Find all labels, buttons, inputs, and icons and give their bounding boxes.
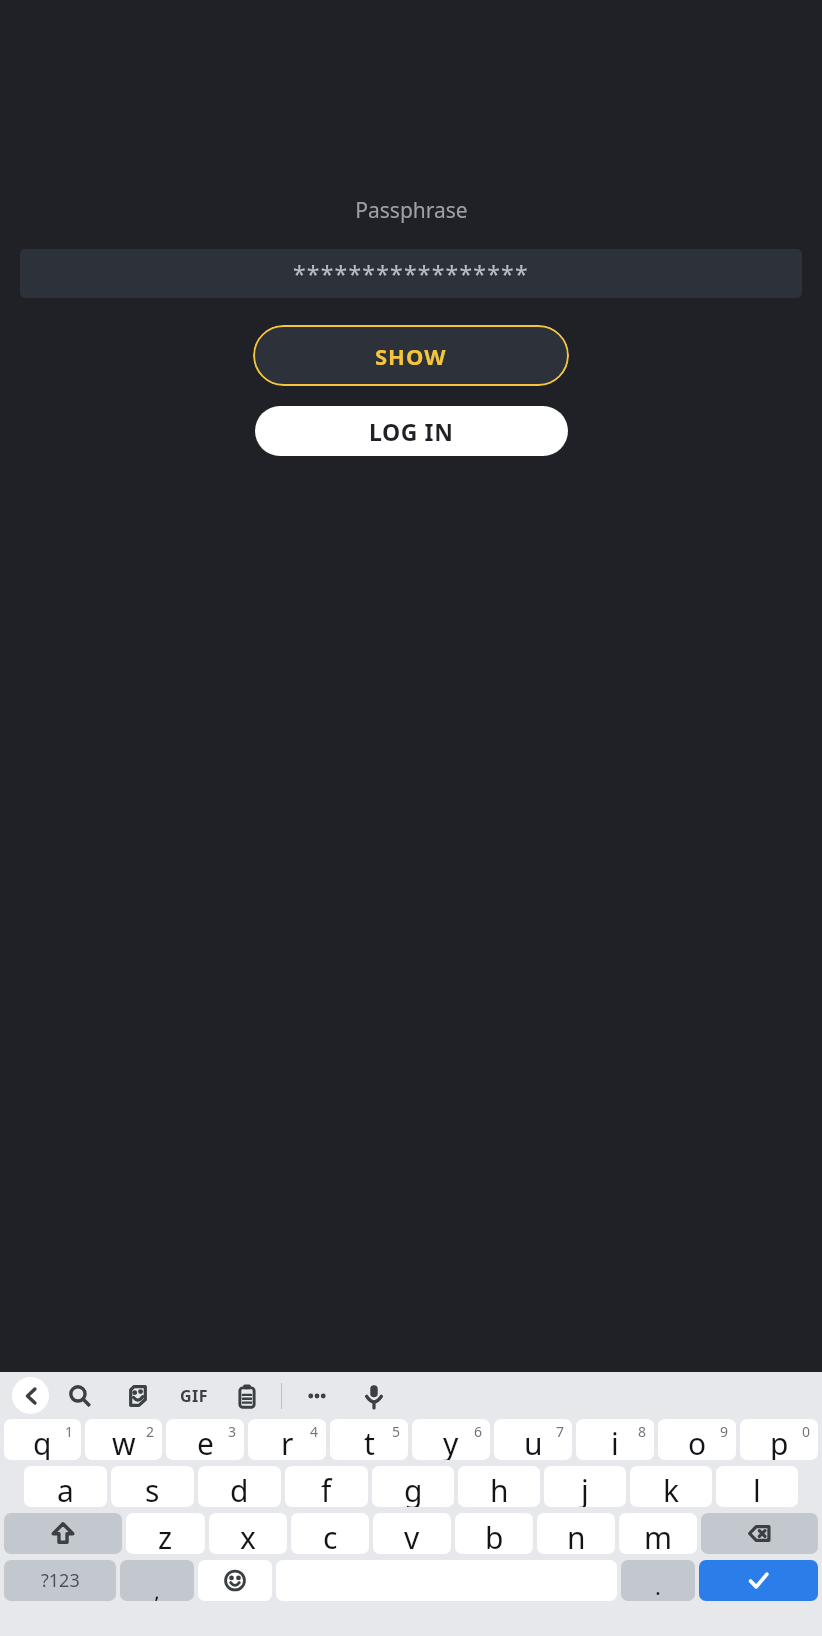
staticText: SHOW [375,341,447,371]
staticText: 0 [802,1422,811,1441]
button[interactable]: c [291,1513,369,1554]
staticText: v [404,1517,420,1554]
button[interactable]: Emoji [198,1560,272,1601]
button[interactable]: Backspace [701,1513,818,1554]
button[interactable]: Back [12,1377,49,1414]
button[interactable]: Voice input [359,1381,389,1411]
staticText: 8 [638,1422,647,1441]
staticText: 5 [392,1422,401,1441]
staticText: d [230,1470,249,1507]
button[interactable]: 6 [412,1419,490,1460]
button[interactable]: SHOW [253,325,569,386]
button[interactable]: 9 [658,1419,736,1460]
staticText: p [770,1423,789,1460]
staticText: a [57,1470,74,1507]
button[interactable]: ***************** [20,249,802,298]
button[interactable]: Enter [699,1560,818,1601]
staticText: c [323,1517,338,1554]
staticText: y [443,1423,459,1460]
staticText: r [281,1423,294,1460]
staticText: 9 [720,1422,729,1441]
button[interactable]: m [619,1513,697,1554]
button[interactable]: f [285,1466,368,1507]
button[interactable]: Stickers [123,1381,153,1411]
button[interactable]: x [209,1513,287,1554]
button[interactable]: 4 [248,1419,326,1460]
button[interactable]: More options [302,1381,332,1411]
button[interactable]: 1 [4,1419,81,1460]
staticText: ?123 [41,1568,80,1593]
button[interactable]: h [458,1466,540,1507]
staticText: t [364,1423,375,1460]
staticText: k [663,1470,680,1507]
staticText: g [404,1470,423,1507]
button[interactable]: n [537,1513,615,1554]
staticText: j [581,1470,589,1507]
staticText: 7 [556,1422,565,1441]
staticText: e [197,1423,214,1460]
staticText: s [145,1470,160,1507]
button[interactable]: , [120,1560,194,1601]
staticText: h [490,1470,509,1507]
staticText: l [753,1470,761,1507]
staticText: z [158,1517,173,1554]
button[interactable]: z [126,1513,205,1554]
button[interactable]: LOG IN [255,406,568,456]
staticText: 4 [310,1422,319,1441]
staticText: x [240,1517,256,1554]
staticText: GIF [180,1385,209,1407]
staticText: m [644,1517,673,1554]
button[interactable]: ?123 [4,1560,116,1601]
staticText: Passphrase [355,196,468,225]
staticText: LOG IN [369,416,454,447]
button[interactable]: 5 [330,1419,408,1460]
button[interactable]: s [111,1466,194,1507]
button[interactable]: Search [66,1382,94,1410]
staticText: b [485,1517,504,1554]
button[interactable]: b [455,1513,533,1554]
staticText: 3 [228,1422,237,1441]
staticText: u [524,1423,543,1460]
button[interactable]: j [544,1466,626,1507]
button[interactable]: 0 [740,1419,818,1460]
staticText: f [321,1470,332,1507]
staticText: 1 [65,1422,74,1441]
staticText: , [154,1575,160,1601]
staticText: q [33,1423,52,1460]
staticText: ***************** [293,258,529,289]
button[interactable]: Clipboard [232,1381,262,1411]
staticText: w [112,1423,136,1460]
button[interactable]: l [716,1466,798,1507]
button[interactable]: GIF [176,1378,212,1414]
button[interactable]: . [621,1560,695,1601]
button[interactable]: Shift [4,1513,122,1554]
button[interactable]: g [372,1466,454,1507]
button[interactable]: v [373,1513,451,1554]
button[interactable]: 2 [85,1419,162,1460]
staticText: 6 [474,1422,483,1441]
button[interactable]: d [198,1466,281,1507]
staticText: o [688,1423,707,1460]
button[interactable]: 7 [494,1419,572,1460]
button[interactable]: 8 [576,1419,654,1460]
staticText: n [567,1517,586,1554]
staticText: 2 [146,1422,155,1441]
staticText: i [611,1423,619,1460]
staticText: . [655,1571,661,1601]
button[interactable]: 3 [166,1419,244,1460]
button[interactable]: k [630,1466,712,1507]
button[interactable]: a [24,1466,107,1507]
